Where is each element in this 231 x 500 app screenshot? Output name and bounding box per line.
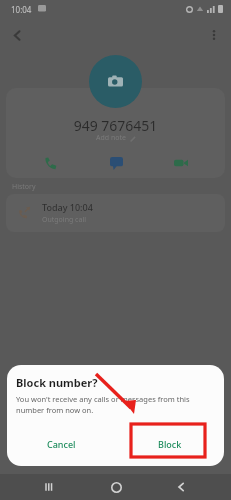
button[interactable]: Back bbox=[4, 22, 30, 48]
button[interactable]: Call bbox=[35, 150, 65, 176]
staticText: Add note bbox=[96, 133, 126, 143]
staticText: You won't receive any calls or messages … bbox=[16, 394, 216, 415]
staticText: 949 7676451 bbox=[0, 116, 231, 135]
button[interactable]: Back bbox=[166, 474, 196, 500]
button[interactable]: Block bbox=[115, 427, 224, 461]
staticText: History bbox=[12, 182, 36, 192]
button[interactable]: Recent apps bbox=[35, 474, 65, 500]
button[interactable]: Home bbox=[101, 474, 131, 500]
button[interactable]: Cancel bbox=[7, 427, 115, 461]
button[interactable]: Video call bbox=[166, 150, 196, 176]
staticText: Block bbox=[158, 438, 182, 450]
button[interactable]: Add note bbox=[96, 133, 136, 143]
staticText: Cancel bbox=[47, 438, 76, 450]
staticText: Today 10:04 bbox=[42, 201, 93, 213]
staticText: 10:04 bbox=[11, 4, 32, 15]
staticText: Outgoing call bbox=[42, 215, 87, 225]
button[interactable]: More options bbox=[201, 22, 227, 48]
button[interactable]: Contact photo bbox=[89, 55, 142, 108]
button[interactable]: Today 10:04 bbox=[6, 194, 225, 232]
staticText: Block number? bbox=[16, 375, 98, 390]
button[interactable]: Message bbox=[101, 150, 131, 176]
